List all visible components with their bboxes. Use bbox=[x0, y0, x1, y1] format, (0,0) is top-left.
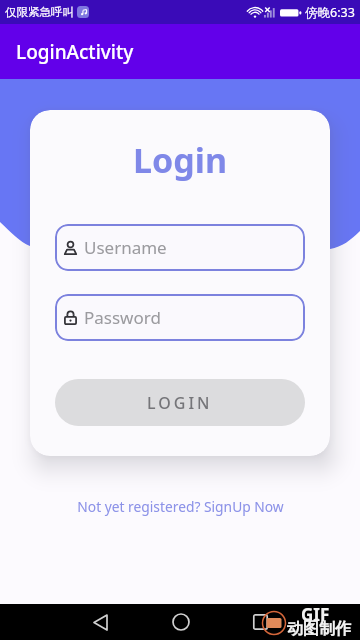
button[interactable]: LOGIN bbox=[55, 379, 305, 426]
staticText: 傍晚6:33 bbox=[305, 4, 355, 21]
staticText: LoginActivity bbox=[16, 39, 134, 65]
staticText: GIF bbox=[301, 603, 330, 626]
button[interactable]: Recents bbox=[242, 604, 278, 640]
staticText: 动图制作 bbox=[287, 619, 351, 639]
staticText: LOGIN bbox=[147, 392, 213, 414]
staticText: 仅限紧急呼叫 bbox=[5, 5, 74, 19]
staticText: Login bbox=[133, 137, 228, 183]
button[interactable]: Username bbox=[55, 224, 305, 271]
button[interactable]: Password bbox=[55, 294, 305, 341]
staticText: Username bbox=[84, 236, 167, 259]
button[interactable]: Home bbox=[163, 604, 199, 640]
staticText: Password bbox=[84, 306, 161, 329]
button[interactable]: Back bbox=[82, 604, 118, 640]
button[interactable]: Not yet registered? SignUp Now bbox=[73, 493, 288, 520]
